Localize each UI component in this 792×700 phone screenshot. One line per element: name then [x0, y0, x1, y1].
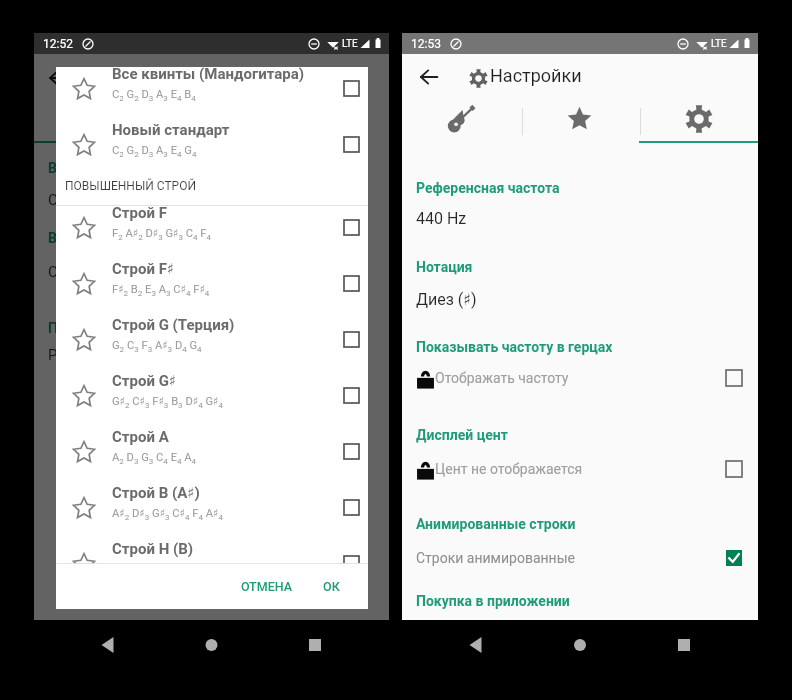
staticText: Строй H (B) — [112, 540, 194, 558]
staticText: Референсная частота — [416, 180, 560, 196]
staticText: Новый стандарт — [112, 121, 230, 139]
staticText: ОК — [323, 579, 340, 594]
staticText: Нотация — [416, 259, 473, 275]
staticText: Показывать частоту в герцах — [416, 339, 613, 355]
staticText: Настройки — [490, 65, 582, 86]
staticText: Включить вибрацию — [48, 230, 186, 246]
staticText: Строй B (A♯) — [112, 484, 200, 502]
button[interactable]: Переключатель — [723, 367, 745, 389]
button[interactable]: Переключатель — [723, 547, 745, 569]
staticText: G♯2 C♯3 F♯3 B3 D♯4 G♯4 — [112, 395, 223, 410]
staticText: 12:53 — [411, 37, 441, 51]
staticText: Строй F — [112, 204, 167, 222]
staticText: Включить метроном — [48, 160, 186, 176]
button[interactable]: ОТМЕНА — [231, 571, 303, 602]
staticText: Строки не отображаются — [48, 263, 226, 281]
staticText: Размер шрифта — [48, 346, 160, 364]
button[interactable]: Переключатель — [723, 458, 745, 480]
button[interactable]: Строй G♯ — [56, 374, 368, 430]
button[interactable]: Строй A — [56, 430, 368, 486]
button[interactable]: Строй F♯ — [56, 262, 368, 318]
staticText: G2 C3 F3 A♯3 D4 G4 — [112, 339, 202, 354]
button[interactable]: Настройки — [639, 100, 758, 143]
button[interactable]: Строй G (Терция) — [56, 318, 368, 374]
staticText: Строй F♯ — [112, 260, 175, 278]
button[interactable]: Все квинты (Мандогитара) — [56, 67, 368, 123]
staticText: Отображать частоту — [435, 370, 569, 386]
staticText: Строй G (Терция) — [112, 316, 235, 334]
button[interactable]: Назад — [413, 61, 445, 93]
staticText: Строй A — [112, 428, 169, 446]
staticText: Показывать ноты — [48, 320, 169, 336]
button[interactable]: Строй H (B) — [56, 542, 368, 598]
button[interactable]: Строй F — [56, 206, 368, 262]
button[interactable]: Строй B (A♯) — [56, 486, 368, 542]
button[interactable]: Цент не отображается — [402, 457, 758, 481]
staticText: Анимированные строки — [416, 516, 576, 532]
staticText: Дисплей цент — [416, 427, 508, 443]
button[interactable]: Диез (♯) — [402, 290, 758, 314]
button[interactable]: Строки анимированные — [402, 546, 758, 570]
button[interactable]: Тюнер — [402, 100, 520, 143]
staticText: Строки не отображаются — [48, 191, 226, 209]
staticText: Цент не отображается — [435, 461, 583, 477]
staticText: C2 G2 D3 A3 E4 B4 — [112, 88, 196, 103]
staticText: Покупка в приложении — [416, 593, 570, 609]
staticText: ОТМЕНА — [241, 579, 293, 594]
staticText: Строки анимированные — [416, 550, 575, 566]
staticText: F♯2 B2 E3 A3 C♯4 F♯4 — [112, 283, 210, 298]
staticText: 12:52 — [43, 37, 73, 51]
staticText: LTE — [711, 38, 727, 50]
staticText: Строй G♯ — [112, 372, 177, 390]
staticText: B2 E3 A3 D4 F♯4 B4 — [112, 563, 200, 578]
staticText: 440 Hz — [416, 209, 467, 228]
staticText: C2 G2 D3 A3 E4 G4 — [112, 144, 197, 159]
staticText: Диез (♯) — [416, 290, 477, 309]
button[interactable]: Новый стандарт — [56, 123, 368, 179]
button[interactable]: 440 Hz — [402, 209, 758, 233]
staticText: LTE — [342, 38, 358, 50]
staticText: ПОВЫШЕННЫЙ СТРОЙ — [65, 179, 197, 193]
staticText: F2 A♯2 D♯3 G♯3 C4 F4 — [112, 227, 212, 242]
button[interactable]: ОК — [313, 571, 350, 602]
staticText: A2 D3 G3 C4 E4 A4 — [112, 451, 197, 466]
button[interactable]: Отображать частоту — [402, 366, 758, 390]
staticText: Все квинты (Мандогитара) — [112, 65, 305, 83]
button[interactable]: Избранное — [520, 100, 639, 143]
staticText: A♯2 D♯3 G♯3 C♯4 F4 A♯4 — [112, 507, 223, 522]
